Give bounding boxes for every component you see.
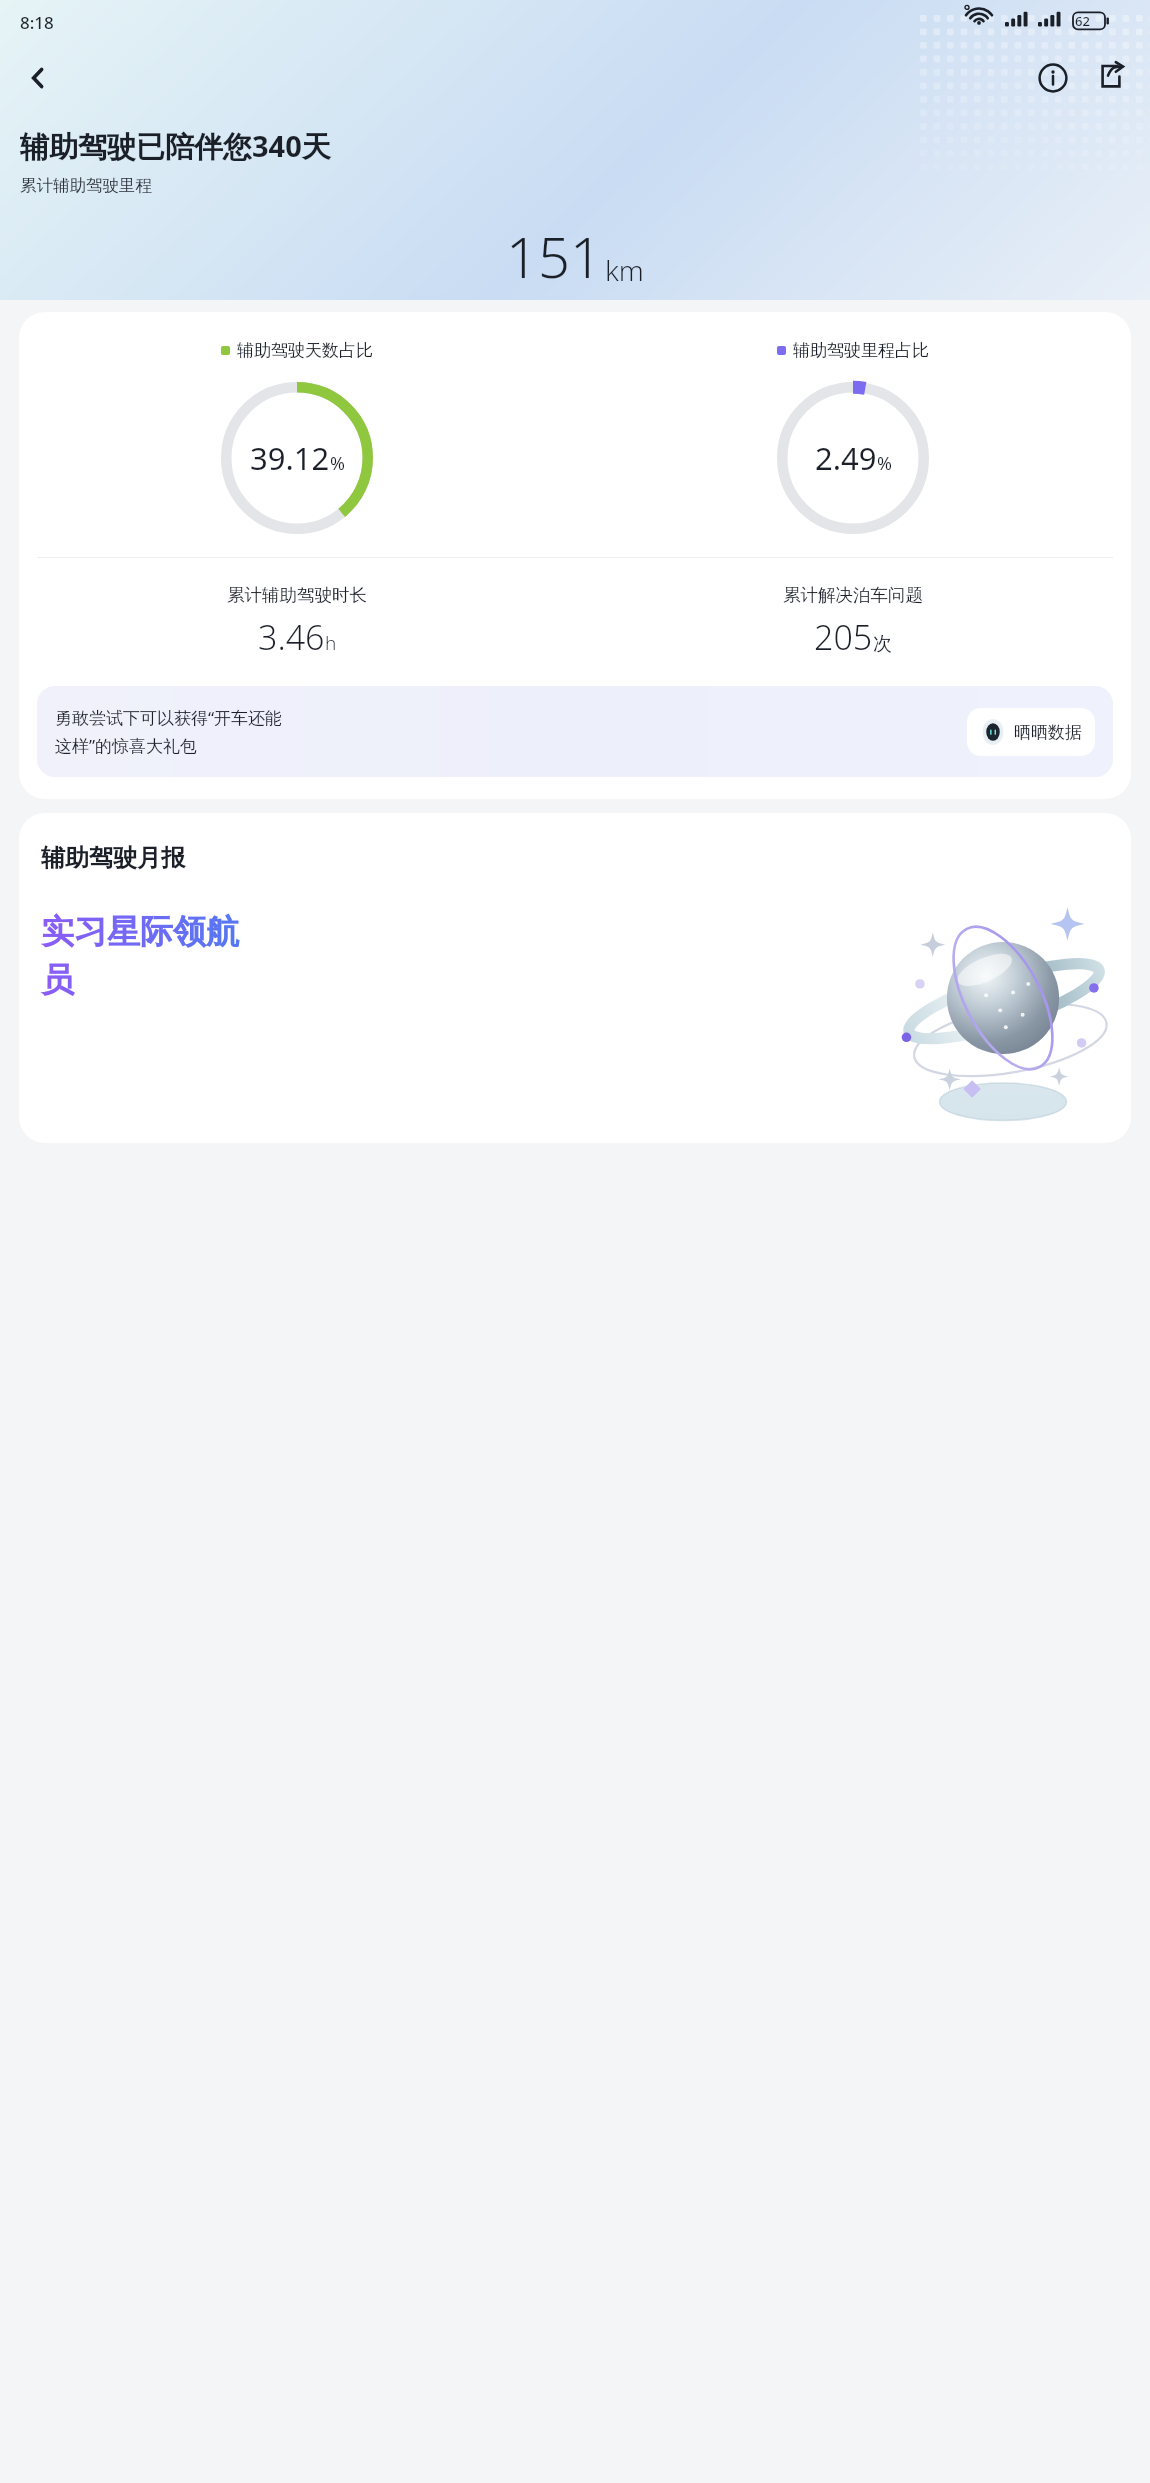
staticText: % [330,451,345,476]
staticText: 辅助驾驶已陪伴您340天 [20,126,331,166]
button[interactable]: 辅助驾驶月报 [19,813,1131,1143]
staticText: km [605,251,644,289]
button[interactable]: Info [1028,53,1078,103]
staticText: 辅助驾驶里程占比 [793,340,929,361]
staticText: 勇敢尝试下可以获得“开车还能 [55,706,283,729]
staticText: % [877,451,892,476]
staticText: 3.46 [258,614,325,660]
staticText: 辅助驾驶月报 [41,843,185,873]
button[interactable]: Share [1086,53,1136,103]
staticText: 8:18 [20,11,54,34]
button[interactable]: Back [14,54,62,102]
staticText: 205 [814,614,873,660]
staticText: h [325,630,337,656]
staticText: 晒晒数据 [1014,722,1082,743]
button[interactable]: 勇敢尝试下可以获得“开车还能 [37,686,1113,777]
staticText: 累计辅助驾驶里程 [20,175,152,196]
staticText: 实习星际领航 员 [41,911,239,1001]
staticText: 这样”的惊喜大礼包 [55,734,198,757]
staticText: 辅助驾驶天数占比 [237,340,373,361]
staticText: 151 [506,218,602,294]
staticText: 累计辅助驾驶时长 [227,584,367,606]
staticText: 39.12 [250,437,330,479]
staticText: 2.49 [815,437,877,479]
button[interactable]: 晒晒数据 [967,708,1095,756]
staticText: 62 [1075,12,1090,30]
staticText: 累计解决泊车问题 [783,584,923,606]
staticText: 次 [873,632,892,656]
